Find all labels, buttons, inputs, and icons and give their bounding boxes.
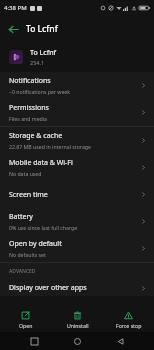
staticText: 0% use since last full charge (9, 224, 78, 231)
staticText: ADVANCED (9, 268, 36, 275)
button[interactable]: Back (111, 332, 129, 350)
staticText: Battery (9, 212, 33, 222)
staticText: No data used (9, 170, 42, 177)
button[interactable]: Mobile data & Wi-Fi (0, 154, 154, 181)
button[interactable]: Battery (0, 208, 154, 235)
staticText: Permissions (9, 103, 49, 113)
staticText: Notifications (9, 76, 51, 86)
button[interactable]: Notifications (0, 72, 154, 99)
staticText: Force stop (116, 322, 142, 329)
button[interactable]: Open by default (0, 235, 154, 262)
button[interactable]: Screen time (0, 181, 154, 208)
staticText: Files and media (9, 115, 47, 122)
staticText: 254.1 (30, 59, 45, 66)
button[interactable]: Home (68, 332, 86, 350)
staticText: Open (19, 322, 33, 329)
staticText: Storage & cache (9, 131, 63, 141)
button[interactable]: Display over other apps (0, 280, 154, 296)
staticText: No defaults set (9, 251, 46, 258)
staticText: Open by default (9, 239, 62, 249)
button[interactable]: To Lcfnf (0, 42, 154, 72)
button[interactable]: Back (0, 16, 26, 42)
button[interactable]: Recent apps (25, 332, 43, 350)
staticText: ~0 notifications per week (9, 88, 71, 95)
staticText: To Lcfnf (30, 48, 57, 58)
staticText: Mobile data & Wi-Fi (9, 158, 73, 168)
button[interactable]: Open app (0, 309, 51, 331)
button[interactable]: Uninstall app (52, 309, 103, 331)
button[interactable]: Permissions (0, 99, 154, 126)
staticText: Display over other apps (9, 283, 87, 293)
staticText: Uninstall (67, 322, 89, 329)
staticText: Screen time (9, 190, 48, 200)
staticText: 22.87 MB used in internal storage (9, 143, 91, 150)
button[interactable]: Force stop app (103, 309, 154, 331)
button[interactable]: Storage & cache (0, 127, 154, 154)
staticText: To Lcfnf (26, 23, 58, 35)
staticText: 4:38 PM (4, 4, 27, 12)
